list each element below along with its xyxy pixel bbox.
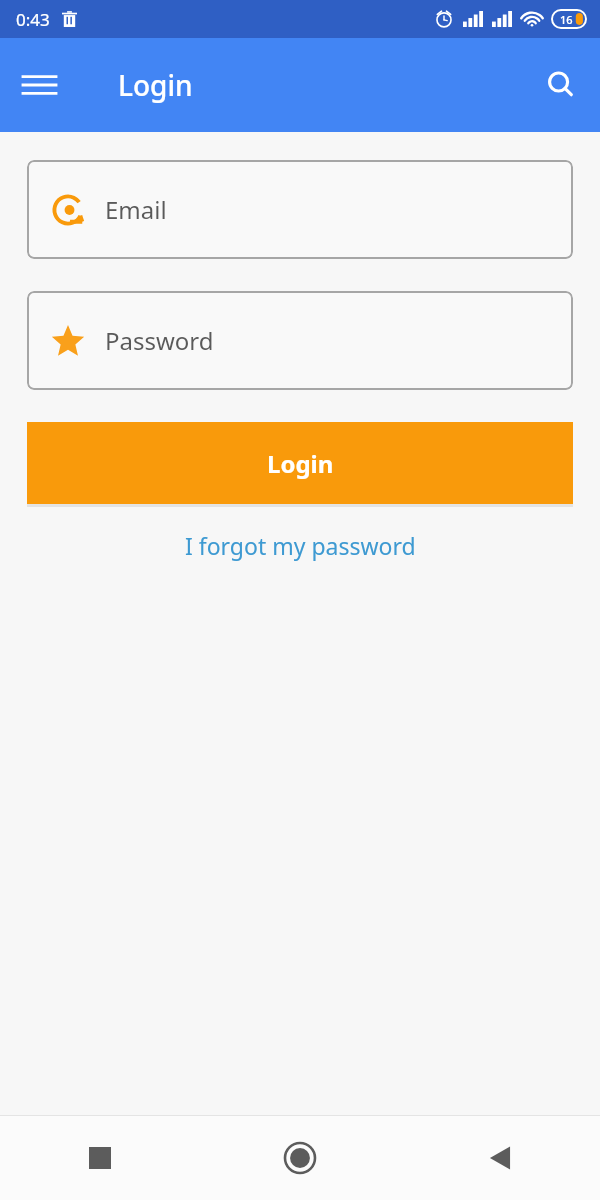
staticText: I forgot my password	[185, 530, 416, 561]
button[interactable]: Home	[200, 1116, 400, 1200]
button[interactable]: Login	[27, 422, 573, 504]
button[interactable]: Recent apps	[0, 1116, 200, 1200]
button[interactable]: Email	[27, 160, 573, 259]
button[interactable]: Password	[27, 291, 573, 390]
staticText: Email	[105, 193, 167, 226]
staticText: Login	[267, 447, 334, 480]
button[interactable]: Open navigation menu	[14, 60, 64, 110]
staticText: Password	[105, 324, 214, 357]
staticText: 0:43	[16, 8, 50, 31]
staticText: Login	[118, 66, 193, 104]
button[interactable]: I forgot my password	[175, 526, 426, 565]
staticText: 16	[560, 12, 573, 27]
button[interactable]: Search	[536, 60, 586, 110]
button[interactable]: Back	[400, 1116, 600, 1200]
